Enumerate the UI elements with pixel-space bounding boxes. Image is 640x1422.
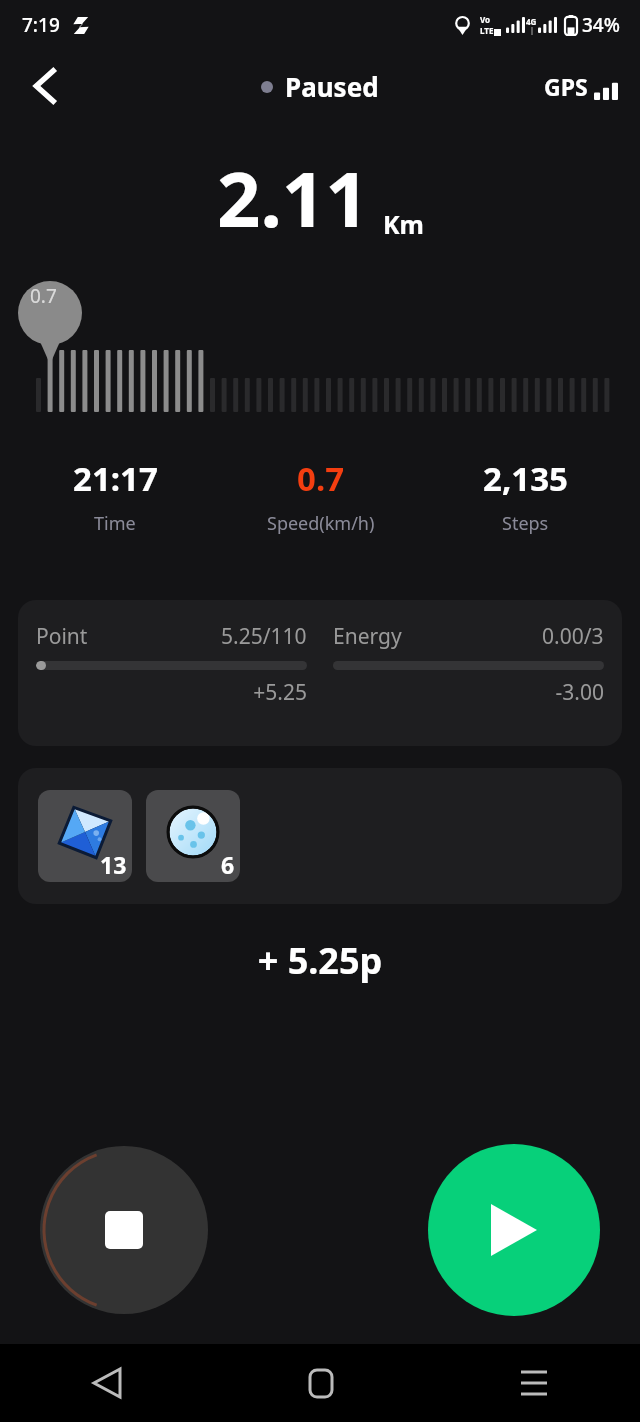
staticText: GPS — [544, 71, 588, 102]
staticText: Energy — [333, 622, 402, 651]
staticText: +5.25 — [36, 678, 307, 707]
staticText: Time — [94, 511, 136, 536]
staticText: 0.7 — [30, 283, 57, 309]
staticText: Km — [383, 207, 424, 241]
button[interactable]: 21:17 — [12, 456, 218, 536]
staticText: 7:19 — [22, 12, 60, 38]
staticText: Vo — [480, 14, 491, 25]
button[interactable]: Point — [18, 600, 622, 746]
staticText: 0.7 — [297, 456, 345, 501]
staticText: Point — [36, 622, 88, 651]
staticText: 21:17 — [73, 456, 158, 501]
staticText: 5.25/110 — [221, 622, 307, 651]
button[interactable]: Recent apps — [427, 1344, 640, 1422]
button[interactable]: Back — [0, 1344, 214, 1422]
staticText: 4G — [526, 16, 537, 27]
staticText: 2.11 — [217, 146, 369, 250]
button[interactable]: 2,135 — [423, 456, 628, 536]
button[interactable]: Resume — [428, 1144, 600, 1316]
button[interactable]: GPS — [536, 63, 626, 110]
button[interactable]: 13 — [38, 790, 132, 882]
button[interactable]: 0.7 — [218, 456, 423, 536]
button[interactable]: Back — [18, 58, 74, 114]
button[interactable]: Stop — [40, 1146, 208, 1314]
button[interactable]: 6 — [146, 790, 240, 882]
staticText: 6 — [221, 849, 235, 880]
staticText: 13 — [100, 849, 127, 880]
staticText: Steps — [502, 511, 549, 536]
staticText: LTE — [480, 25, 494, 36]
staticText: 2,135 — [483, 456, 568, 501]
staticText: Speed(km/h) — [267, 511, 375, 536]
staticText: + 5.25p — [0, 936, 640, 985]
staticText: 0.00/3 — [542, 622, 604, 651]
button[interactable]: Home — [214, 1344, 427, 1422]
staticText: -3.00 — [333, 678, 604, 707]
staticText: Paused — [285, 69, 379, 104]
staticText: 34% — [582, 12, 620, 38]
